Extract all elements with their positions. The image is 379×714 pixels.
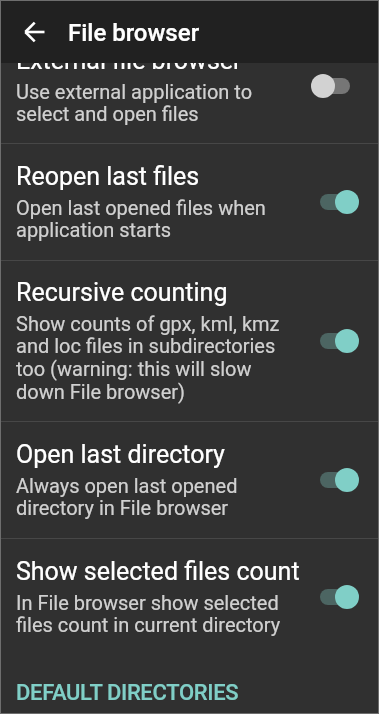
staticText: File browser: [68, 19, 200, 47]
staticText: Show selected files count: [16, 557, 300, 586]
staticText: External file browser: [16, 46, 242, 75]
button[interactable]: Open last directory: [0, 422, 379, 538]
button[interactable]: Navigate up: [0, 0, 68, 63]
staticText: Show counts of gpx, kml, kmz and loc fil…: [16, 312, 280, 404]
button[interactable]: External file browser: [0, 28, 379, 143]
button[interactable]: Recursive counting: [0, 261, 379, 421]
staticText: Recursive counting: [16, 278, 228, 307]
staticText: Open last directory: [16, 440, 225, 469]
staticText: Reopen last files: [16, 162, 200, 191]
staticText: Open last opened files when application …: [16, 196, 266, 242]
staticText: Use external application to select and o…: [16, 80, 253, 126]
button[interactable]: Show selected files count: [0, 539, 379, 655]
staticText: In File browser show selected files coun…: [16, 591, 281, 637]
staticText: Always open last opened directory in Fil…: [16, 474, 238, 520]
staticText: DEFAULT DIRECTORIES: [16, 680, 239, 706]
button[interactable]: Reopen last files: [0, 144, 379, 260]
